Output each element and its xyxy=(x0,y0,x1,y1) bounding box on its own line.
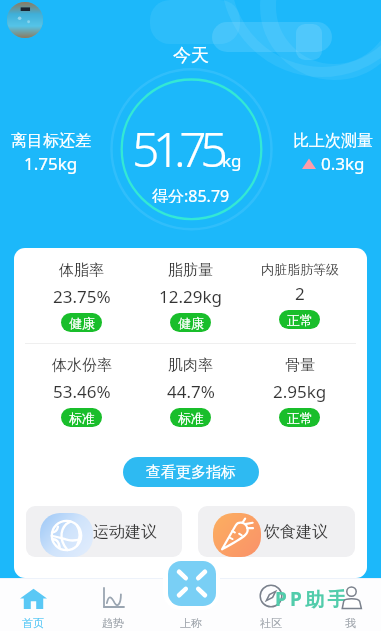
staticText: 2.95kg xyxy=(273,380,327,403)
staticText: 1.75kg xyxy=(24,152,78,175)
staticText: 上称 xyxy=(180,616,202,629)
staticText: 肌肉率 xyxy=(168,356,213,375)
staticText: 运动建议 xyxy=(93,522,157,542)
staticText: 饮食建议 xyxy=(264,522,328,542)
button[interactable]: 社区 xyxy=(238,583,304,629)
staticText: 23.75% xyxy=(53,285,111,308)
staticText: 体脂率 xyxy=(59,261,104,280)
staticText: kg xyxy=(222,149,242,172)
staticText: 今天 xyxy=(173,44,209,66)
staticText: 标准 xyxy=(178,410,204,426)
staticText: 我 xyxy=(345,616,356,629)
staticText: 比上次测量 xyxy=(293,131,373,151)
staticText: PP助手 xyxy=(275,586,350,612)
staticText: 查看更多指标 xyxy=(146,463,236,482)
staticText: 正常 xyxy=(287,312,313,328)
staticText: 趋势 xyxy=(102,616,124,629)
staticText: 得分:85.79 xyxy=(152,185,230,203)
button[interactable]: 我 xyxy=(317,583,381,629)
staticText: 12.29kg xyxy=(159,285,222,308)
staticText: 标准 xyxy=(69,410,95,426)
staticText: 内脏脂肪等级 xyxy=(261,261,339,277)
button[interactable]: 饮食建议 xyxy=(198,506,355,557)
staticText: 脂肪量 xyxy=(168,261,213,280)
staticText: 健康 xyxy=(69,315,95,331)
staticText: 离目标还差 xyxy=(11,131,91,151)
staticText: 51.75 xyxy=(132,116,222,181)
staticText: 骨量 xyxy=(285,356,315,375)
staticText: 健康 xyxy=(178,315,204,331)
button[interactable]: 上称 xyxy=(158,583,224,629)
staticText: 53.46% xyxy=(53,380,111,403)
staticText: 首页 xyxy=(22,616,44,629)
staticText: 社区 xyxy=(260,616,282,629)
button[interactable]: Weigh in xyxy=(168,561,216,606)
staticText: 44.7% xyxy=(167,380,215,403)
button[interactable]: 运动建议 xyxy=(26,506,182,557)
button[interactable]: Profile xyxy=(7,2,43,38)
staticText: 2 xyxy=(295,282,305,305)
button[interactable]: 查看更多指标 xyxy=(123,457,259,487)
button[interactable]: 首页 xyxy=(0,583,66,629)
staticText: 正常 xyxy=(287,410,313,426)
staticText: 体水份率 xyxy=(52,356,112,375)
button[interactable]: 趋势 xyxy=(80,583,146,629)
staticText: 0.3kg xyxy=(321,152,365,175)
